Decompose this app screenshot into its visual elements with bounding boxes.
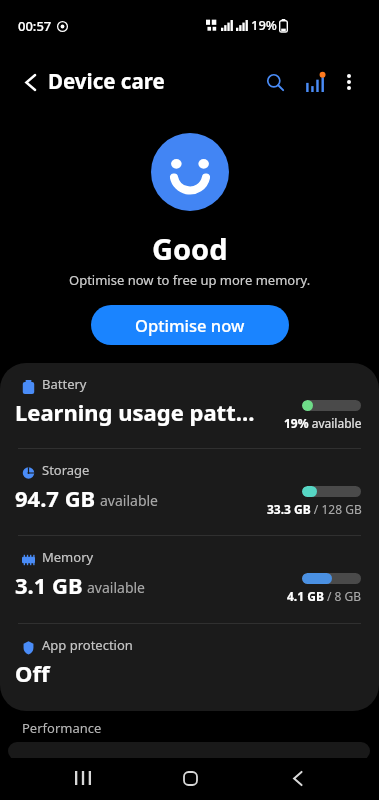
button[interactable]: Memory	[0, 536, 379, 623]
button[interactable]: App protection	[0, 624, 379, 711]
button[interactable]: Back	[0, 58, 48, 106]
staticText: Storage	[42, 461, 90, 479]
button[interactable]: Storage	[0, 449, 379, 535]
staticText: 94.7 GB	[15, 483, 96, 513]
staticText: Device care	[48, 67, 165, 95]
button[interactable]: Optimise now	[91, 305, 289, 345]
button[interactable]: Recent apps	[45, 758, 121, 800]
button[interactable]: Search	[253, 60, 297, 104]
staticText: 3.1 GB	[15, 570, 83, 600]
staticText: 4.1 GB / 8 GB	[287, 588, 362, 604]
staticText: 19% available	[284, 415, 362, 431]
staticText: Optimise now to free up more memory.	[69, 271, 311, 289]
staticText: App protection	[42, 636, 133, 654]
staticText: Off	[15, 658, 50, 688]
button[interactable]: Usage statistics	[293, 60, 337, 104]
staticText: Performance	[22, 719, 102, 737]
button[interactable]: Back	[259, 758, 335, 800]
button[interactable]: Battery	[0, 363, 379, 448]
staticText: 19%	[251, 16, 277, 34]
staticText: Learning usage patter…	[15, 397, 261, 427]
staticText: Memory	[42, 548, 94, 566]
staticText: available	[87, 578, 146, 597]
staticText: Optimise now	[135, 314, 245, 336]
button[interactable]: Home	[152, 758, 228, 800]
staticText: available	[100, 491, 159, 510]
staticText: Battery	[42, 375, 87, 393]
staticText: 00:57	[18, 17, 52, 35]
staticText: Good	[152, 229, 228, 268]
staticText: 33.3 GB / 128 GB	[267, 501, 362, 517]
button[interactable]: More options	[331, 64, 367, 100]
